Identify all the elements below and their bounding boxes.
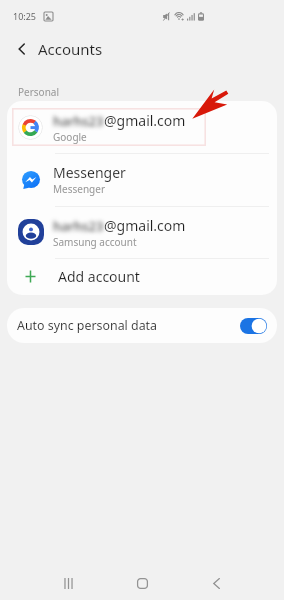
button[interactable]: Auto sync personal data — [7, 308, 277, 343]
button[interactable]: harhs23 — [7, 206, 277, 258]
staticText: Accounts — [38, 39, 103, 59]
staticText: harhs23 — [53, 217, 104, 235]
button[interactable]: Back — [192, 561, 240, 600]
button[interactable]: harhs23 — [7, 101, 277, 153]
staticText: Google — [53, 130, 87, 144]
staticText: 10:25 — [13, 10, 37, 22]
staticText: Personal — [18, 85, 60, 99]
staticText: Add account — [58, 267, 140, 286]
staticText: @gmail.com — [104, 216, 186, 235]
staticText: Auto sync personal data — [17, 317, 158, 334]
staticText: Messenger — [53, 163, 126, 182]
button[interactable]: Add account — [7, 258, 277, 295]
staticText: @gmail.com — [104, 111, 186, 130]
button[interactable]: Navigate up — [6, 33, 38, 65]
button[interactable]: Messenger — [7, 153, 277, 206]
staticText: Messenger — [53, 182, 106, 196]
button[interactable]: Recent apps — [44, 561, 92, 600]
staticText: Samsung account — [53, 235, 137, 249]
button[interactable]: Home — [118, 561, 166, 600]
staticText: harhs23 — [53, 112, 104, 130]
